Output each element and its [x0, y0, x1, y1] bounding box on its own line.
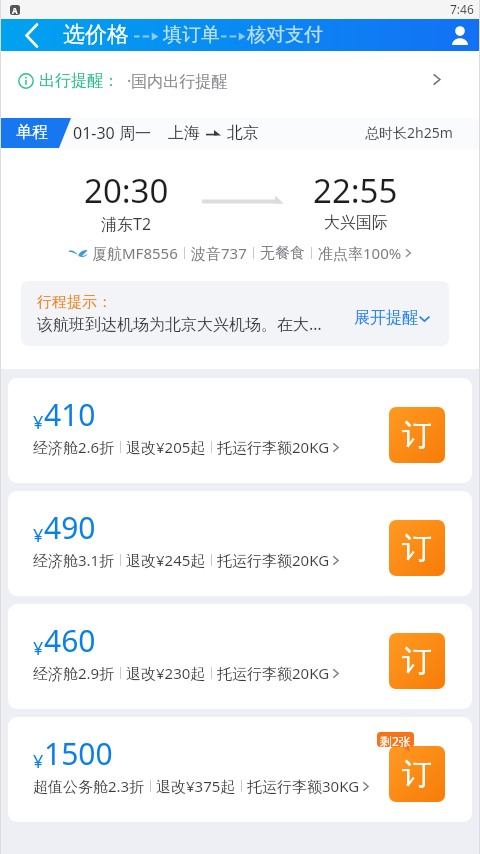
button[interactable]: 行程提示：	[21, 281, 449, 346]
staticText: 剩2张	[380, 733, 411, 749]
button[interactable]: ¥	[8, 491, 472, 596]
staticText: 经济舱2.6折	[33, 437, 115, 457]
staticText: 浦东T2	[101, 213, 152, 235]
button[interactable]: 厦航MF8556	[0, 240, 480, 266]
staticText: 460	[44, 620, 96, 661]
staticText: A	[12, 5, 18, 15]
staticText: 厦航MF8556	[92, 243, 178, 263]
staticText: 出行提醒：	[39, 71, 119, 91]
staticText: 核对支付	[247, 23, 323, 47]
button[interactable]: ¥	[8, 604, 472, 709]
staticText: 490	[44, 507, 96, 548]
staticText: 22:55	[313, 168, 398, 213]
staticText: 超值公务舱2.3折	[33, 776, 145, 796]
staticText: 01-30 周一	[73, 122, 151, 144]
staticText: 北京	[227, 123, 259, 143]
staticText: ¥	[33, 749, 44, 774]
staticText: 退改¥230起	[126, 663, 206, 683]
staticText: ¥	[33, 410, 44, 435]
staticText: 订	[402, 529, 432, 567]
button[interactable]: Account	[440, 19, 480, 51]
staticText: 总时长2h25m	[365, 123, 453, 142]
staticText: 无餐食	[260, 244, 305, 263]
staticText: 订	[402, 416, 432, 454]
staticText: 该航班到达机场为北京大兴机场。在大…	[37, 313, 322, 335]
button[interactable]: Back	[5, 19, 57, 51]
staticText: 托运行李额20KG	[217, 663, 330, 683]
staticText: 订	[402, 755, 432, 793]
button[interactable]: 订	[389, 746, 445, 802]
button[interactable]: 订	[389, 633, 445, 689]
staticText: 填订单	[163, 23, 220, 47]
button[interactable]: 订	[389, 520, 445, 576]
staticText: 7:46	[450, 1, 474, 17]
staticText: 托运行李额30KG	[247, 776, 360, 796]
staticText: 经济舱2.9折	[33, 663, 115, 683]
staticText: 行程提示：	[37, 293, 112, 312]
staticText: 410	[44, 394, 96, 435]
button[interactable]: 出行提醒：	[0, 51, 480, 118]
staticText: 托运行李额20KG	[217, 550, 330, 570]
staticText: 选价格	[63, 21, 129, 49]
staticText: 经济舱3.1折	[33, 550, 115, 570]
staticText: 退改¥205起	[126, 437, 206, 457]
staticText: 托运行李额20KG	[217, 437, 330, 457]
staticText: 波音737	[191, 243, 247, 263]
staticText: 退改¥375起	[156, 776, 236, 796]
staticText: 单程	[16, 122, 48, 142]
button[interactable]: 展开提醒	[354, 308, 431, 328]
staticText: ·国内出行提醒	[127, 70, 228, 92]
staticText: 大兴国际	[324, 213, 388, 233]
staticText: 展开提醒	[354, 308, 418, 328]
staticText: 1500	[44, 733, 113, 774]
staticText: 20:30	[84, 168, 169, 213]
staticText: 订	[402, 642, 432, 680]
button[interactable]: ¥	[8, 717, 472, 822]
staticText: 准点率100%	[318, 243, 402, 263]
button[interactable]: ¥	[8, 378, 472, 483]
staticText: 上海	[168, 123, 200, 143]
staticText: ¥	[33, 636, 44, 661]
button[interactable]: 订	[389, 407, 445, 463]
staticText: 退改¥245起	[126, 550, 206, 570]
staticText: ¥	[33, 523, 44, 548]
